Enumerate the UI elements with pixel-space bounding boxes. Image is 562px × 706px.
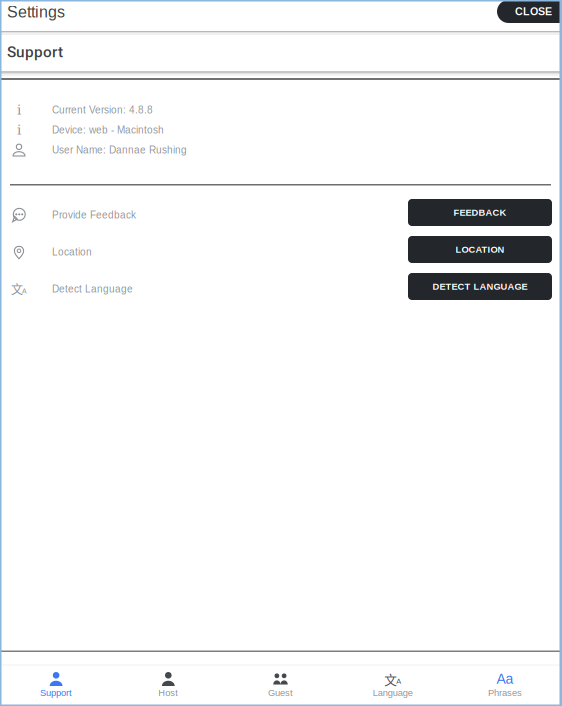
- staticText: Language: [373, 687, 413, 698]
- staticText: Settings: [7, 3, 65, 21]
- staticText: Guest: [268, 687, 293, 698]
- staticText: Location: [52, 246, 92, 258]
- staticText: Host: [158, 687, 178, 698]
- staticText: DETECT LANGUAGE: [432, 281, 527, 292]
- button[interactable]: Host: [112, 665, 224, 706]
- staticText: 文: [11, 280, 23, 298]
- button[interactable]: Aa: [449, 665, 561, 706]
- staticText: i: [17, 102, 21, 118]
- button[interactable]: Support: [0, 665, 112, 706]
- staticText: Current Version: 4.8.8: [52, 104, 153, 116]
- button[interactable]: FEEDBACK: [408, 199, 552, 226]
- staticText: Provide Feedback: [52, 209, 136, 221]
- staticText: Aa: [496, 671, 513, 687]
- button[interactable]: 文: [337, 665, 449, 706]
- button[interactable]: Guest: [224, 665, 337, 706]
- staticText: Support: [40, 687, 72, 698]
- staticText: Phrases: [488, 687, 522, 698]
- staticText: Device: web - Macintosh: [52, 124, 164, 136]
- button[interactable]: DETECT LANGUAGE: [408, 273, 552, 300]
- button[interactable]: LOCATION: [408, 236, 552, 263]
- staticText: A: [22, 287, 27, 295]
- staticText: Detect Language: [52, 283, 133, 295]
- staticText: i: [17, 122, 21, 138]
- staticText: Support: [7, 43, 63, 61]
- staticText: LOCATION: [455, 244, 504, 255]
- button[interactable]: CLOSE: [497, 0, 561, 31]
- staticText: 文: [384, 670, 397, 688]
- staticText: FEEDBACK: [453, 207, 506, 218]
- staticText: A: [396, 677, 401, 685]
- staticText: CLOSE: [515, 5, 552, 17]
- staticText: User Name: Dannae Rushing: [52, 144, 187, 156]
